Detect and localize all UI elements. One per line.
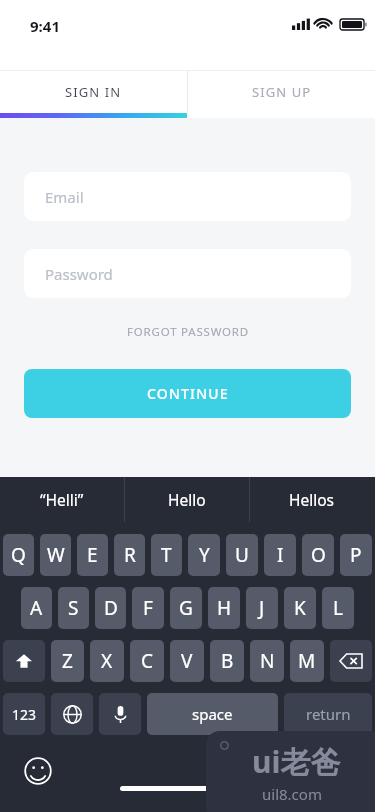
staticText: SIGN UP bbox=[252, 83, 312, 101]
button[interactable]: G bbox=[170, 587, 202, 629]
staticText: N bbox=[260, 648, 275, 674]
button[interactable]: return bbox=[284, 693, 372, 735]
staticText: H bbox=[217, 595, 232, 621]
button[interactable]: P bbox=[340, 534, 372, 576]
button[interactable]: SIGN IN bbox=[0, 71, 187, 113]
staticText: F bbox=[143, 595, 153, 621]
staticText: I bbox=[277, 542, 284, 568]
button[interactable]: Email bbox=[24, 172, 351, 221]
staticText: J bbox=[259, 595, 265, 621]
staticText: T bbox=[161, 542, 172, 568]
button[interactable]: V bbox=[170, 640, 204, 682]
button[interactable]: Backspace bbox=[330, 640, 372, 682]
staticText: G bbox=[179, 595, 193, 621]
button[interactable]: Voice input bbox=[99, 693, 141, 735]
button[interactable]: D bbox=[95, 587, 126, 629]
button[interactable]: Change keyboard language bbox=[51, 693, 93, 735]
button[interactable]: Hellos bbox=[250, 477, 374, 522]
staticText: P bbox=[350, 542, 362, 568]
staticText: W bbox=[47, 542, 65, 568]
staticText: S bbox=[68, 595, 79, 621]
staticText: 123 bbox=[12, 705, 37, 724]
staticText: Z bbox=[62, 648, 73, 674]
button[interactable]: FORGOT PASSWORD bbox=[117, 320, 259, 344]
staticText: E bbox=[87, 542, 98, 568]
staticText: U bbox=[235, 542, 249, 568]
button[interactable]: U bbox=[226, 534, 258, 576]
button[interactable]: C bbox=[130, 640, 164, 682]
staticText: C bbox=[141, 648, 154, 674]
staticText: return bbox=[306, 704, 351, 724]
staticText: Hello bbox=[168, 489, 206, 510]
staticText: X bbox=[101, 648, 113, 674]
button[interactable]: B bbox=[210, 640, 244, 682]
staticText: Hellos bbox=[289, 489, 335, 510]
staticText: 9:41 bbox=[30, 16, 60, 36]
button[interactable]: I bbox=[264, 534, 296, 576]
staticText: CONTINUE bbox=[147, 384, 229, 403]
button[interactable]: space bbox=[147, 693, 278, 735]
staticText: ui老爸 bbox=[252, 741, 341, 782]
staticText: Password bbox=[45, 264, 113, 284]
button[interactable]: W bbox=[40, 534, 71, 576]
button[interactable]: T bbox=[151, 534, 182, 576]
staticText: Email bbox=[45, 187, 84, 207]
staticText: B bbox=[221, 648, 234, 674]
button[interactable]: SIGN UP bbox=[188, 71, 375, 113]
button[interactable]: “Helli” bbox=[0, 477, 124, 522]
staticText: R bbox=[124, 542, 136, 568]
staticText: Q bbox=[11, 542, 26, 568]
button[interactable]: S bbox=[58, 587, 89, 629]
staticText: O bbox=[311, 542, 326, 568]
staticText: FORGOT PASSWORD bbox=[127, 324, 249, 340]
button[interactable]: L bbox=[322, 587, 354, 629]
button[interactable]: Y bbox=[188, 534, 220, 576]
staticText: “Helli” bbox=[40, 489, 84, 510]
button[interactable]: Emoji bbox=[24, 757, 52, 785]
staticText: space bbox=[192, 704, 233, 724]
button[interactable]: F bbox=[132, 587, 164, 629]
button[interactable]: R bbox=[114, 534, 145, 576]
staticText: M bbox=[298, 648, 316, 674]
button[interactable]: N bbox=[250, 640, 284, 682]
staticText: SIGN IN bbox=[65, 83, 122, 101]
button[interactable]: E bbox=[77, 534, 108, 576]
staticText: K bbox=[294, 595, 306, 621]
button[interactable]: O bbox=[302, 534, 334, 576]
button[interactable]: Z bbox=[51, 640, 84, 682]
button[interactable]: K bbox=[284, 587, 316, 629]
button[interactable]: 123 bbox=[3, 693, 45, 735]
staticText: uil8.com bbox=[262, 784, 322, 804]
button[interactable]: A bbox=[21, 587, 52, 629]
button[interactable]: J bbox=[246, 587, 278, 629]
staticText: L bbox=[333, 595, 343, 621]
button[interactable]: Q bbox=[3, 534, 34, 576]
staticText: A bbox=[30, 595, 43, 621]
button[interactable]: Shift bbox=[3, 640, 45, 682]
button[interactable]: CONTINUE bbox=[24, 369, 351, 418]
button[interactable]: X bbox=[90, 640, 124, 682]
button[interactable]: H bbox=[208, 587, 240, 629]
staticText: D bbox=[104, 595, 118, 621]
staticText: Y bbox=[199, 542, 210, 568]
staticText: V bbox=[181, 648, 193, 674]
button[interactable]: M bbox=[290, 640, 324, 682]
button[interactable]: Password bbox=[24, 249, 351, 298]
button[interactable]: Hello bbox=[125, 477, 249, 522]
